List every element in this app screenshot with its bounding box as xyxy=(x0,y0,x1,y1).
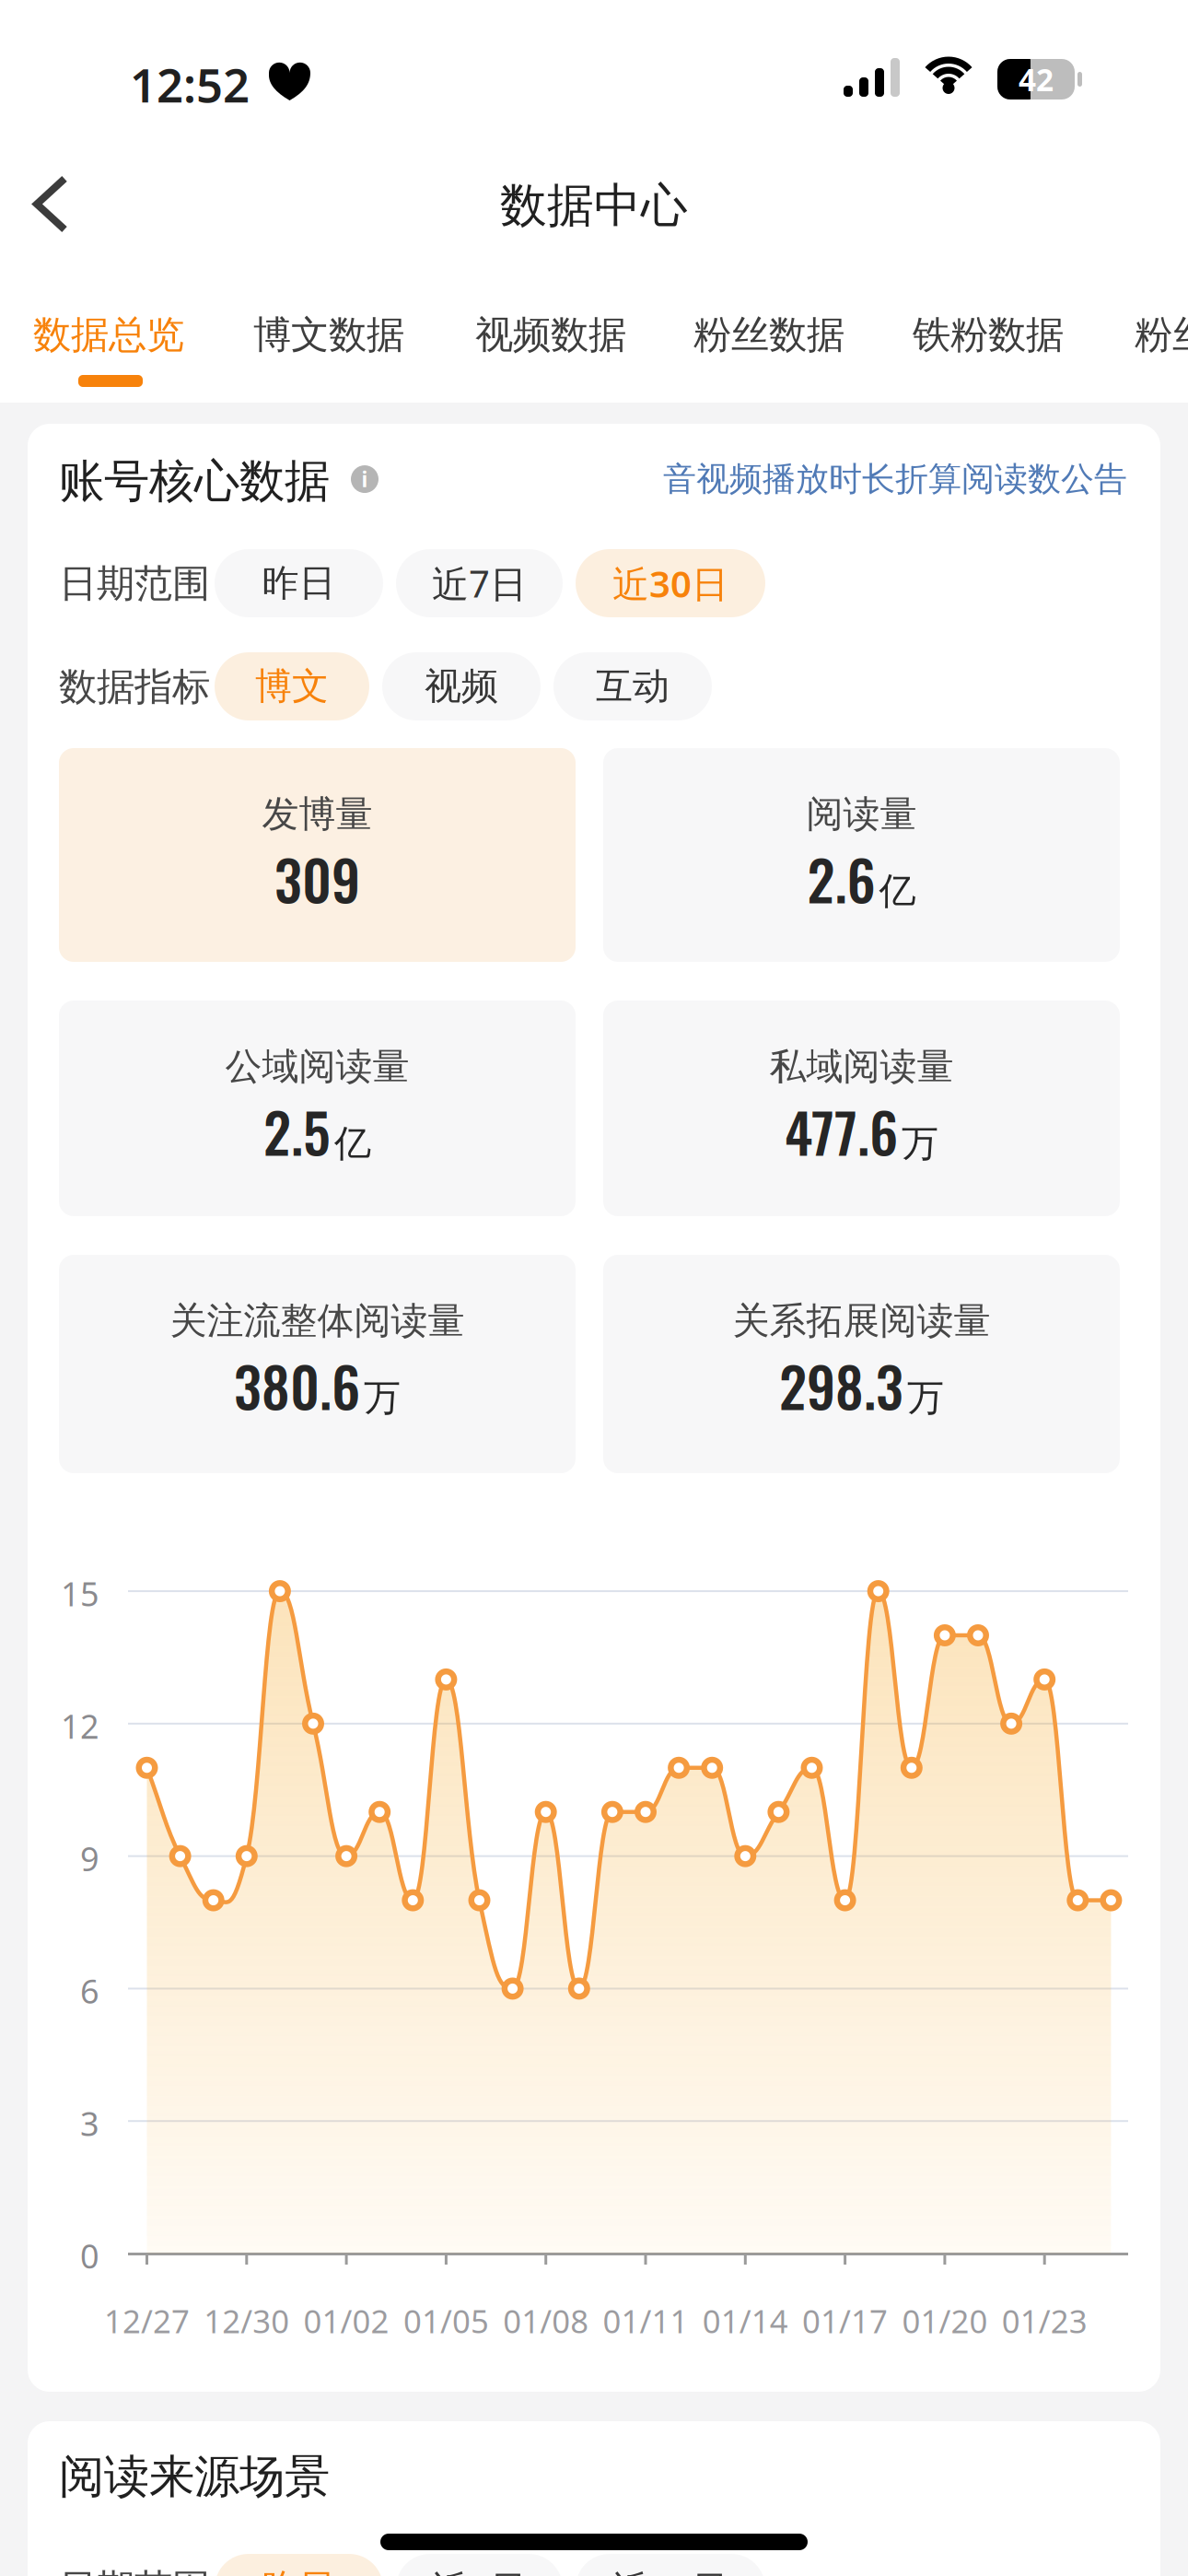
staticText: 万 xyxy=(364,1375,401,1420)
staticText: 477.6 xyxy=(785,1090,898,1172)
staticText: 近30日 xyxy=(612,2563,728,2576)
staticText: 数据指标 xyxy=(59,663,210,710)
staticText: 2.6 xyxy=(807,837,875,919)
staticText: 近7日 xyxy=(432,559,527,608)
button[interactable]: 数据总览 xyxy=(33,304,184,366)
button[interactable]: 昨日 xyxy=(215,549,383,617)
staticText: 12:52 xyxy=(130,53,250,115)
button[interactable]: 博文 xyxy=(215,652,369,720)
staticText: 亿 xyxy=(879,869,916,914)
staticText: 01/17 xyxy=(802,2300,888,2342)
staticText: 380.6 xyxy=(234,1344,360,1426)
staticText: 公域阅读量 xyxy=(225,1044,409,1089)
staticText: 309 xyxy=(274,837,360,919)
staticText: 日期范围 xyxy=(59,560,210,607)
staticText: 阅读量 xyxy=(806,791,917,837)
button[interactable]: 粉丝数据 xyxy=(693,304,844,366)
button[interactable]: 近30日 xyxy=(576,2554,765,2576)
staticText: 15 xyxy=(61,1571,99,1615)
staticText: 博文 xyxy=(255,664,329,709)
button[interactable]: 近30日 xyxy=(576,549,765,617)
staticText: 音视频播放时长折算阅读数公告 xyxy=(663,459,1127,500)
button[interactable]: 互动 xyxy=(553,652,712,720)
button[interactable]: 昨日 xyxy=(215,2554,383,2576)
button[interactable]: Back xyxy=(17,168,85,240)
button[interactable]: 视频 xyxy=(382,652,541,720)
staticText: 阅读来源场景 xyxy=(59,2449,330,2505)
staticText: 博文数据 xyxy=(253,311,404,358)
button[interactable]: 铁粉数据 xyxy=(913,304,1064,366)
button[interactable]: 近7日 xyxy=(396,549,563,617)
staticText: 发博量 xyxy=(262,791,373,837)
staticText: 6 xyxy=(80,1969,99,2013)
staticText: 粉丝数据 xyxy=(693,311,844,358)
staticText: 铁粉数据 xyxy=(913,311,1064,358)
staticText: 01/20 xyxy=(902,2300,988,2342)
staticText: 01/14 xyxy=(702,2300,788,2342)
staticText: 42 xyxy=(1019,59,1054,100)
staticText: 数据中心 xyxy=(500,177,688,234)
staticText: 互动 xyxy=(596,664,670,709)
staticText: 视频 xyxy=(425,664,498,709)
staticText: 12 xyxy=(61,1704,99,1748)
staticText: 12/30 xyxy=(204,2300,289,2342)
staticText: 私域阅读量 xyxy=(769,1044,954,1089)
staticText: 01/11 xyxy=(603,2300,688,2342)
staticText: 数据总览 xyxy=(33,311,184,358)
staticText: 近7日 xyxy=(432,2563,527,2576)
button[interactable]: About this data xyxy=(351,465,379,493)
staticText: 01/23 xyxy=(1002,2300,1087,2342)
button[interactable]: 音视频播放时长折算阅读数公告 xyxy=(663,459,1127,500)
staticText: 账号核心数据 xyxy=(59,453,330,509)
staticText: 298.3 xyxy=(779,1344,903,1426)
staticText: 昨日 xyxy=(262,2565,336,2576)
button[interactable]: 近7日 xyxy=(396,2554,563,2576)
button[interactable]: 视频数据 xyxy=(475,304,626,366)
staticText: 昨日 xyxy=(262,561,336,606)
staticText: 关系拓展阅读量 xyxy=(733,1298,990,1343)
staticText: 01/02 xyxy=(304,2300,389,2342)
button[interactable]: 粉丝服务 xyxy=(1135,304,1188,366)
staticText: 粉丝服务 xyxy=(1135,311,1188,358)
staticText: 万 xyxy=(907,1375,944,1420)
staticText: 2.5 xyxy=(263,1090,331,1172)
staticText: i xyxy=(361,465,368,493)
staticText: 日期范围 xyxy=(59,2565,210,2576)
button[interactable]: 博文数据 xyxy=(253,304,404,366)
staticText: 近30日 xyxy=(612,559,728,608)
staticText: 视频数据 xyxy=(475,311,626,358)
staticText: 关注流整体阅读量 xyxy=(170,1298,465,1343)
staticText: 01/08 xyxy=(503,2300,589,2342)
staticText: 3 xyxy=(80,2101,99,2145)
staticText: 亿 xyxy=(334,1121,371,1166)
staticText: 12/27 xyxy=(104,2300,190,2342)
staticText: 0 xyxy=(80,2234,99,2278)
staticText: 万 xyxy=(902,1121,938,1166)
staticText: 9 xyxy=(80,1836,99,1880)
staticText: 01/05 xyxy=(403,2300,489,2342)
